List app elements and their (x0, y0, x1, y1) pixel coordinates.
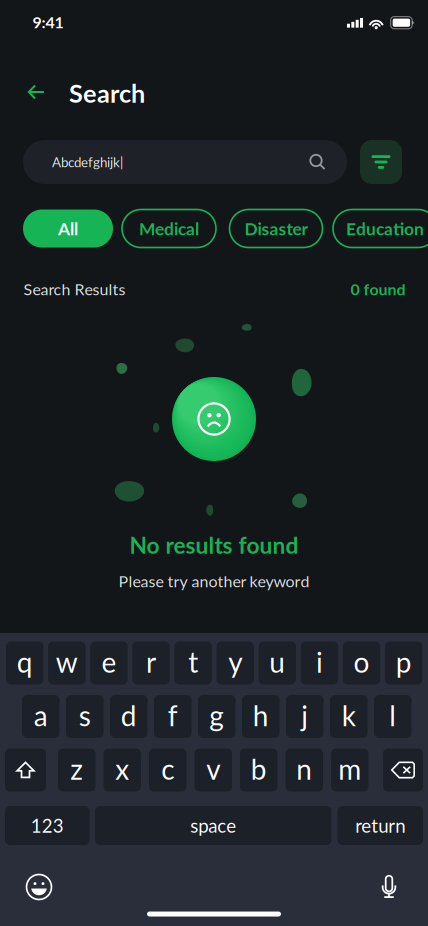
button[interactable]: d (110, 695, 147, 738)
button[interactable]: i (301, 641, 338, 684)
button[interactable]: Education (333, 209, 428, 247)
staticText: 9:41 (32, 12, 63, 32)
button[interactable]: return (338, 806, 423, 845)
button[interactable]: p (385, 641, 422, 684)
button[interactable]: Abcdefghijk| (23, 140, 347, 184)
button[interactable]: h (242, 695, 279, 738)
button[interactable]: e (90, 641, 128, 684)
button[interactable]: space (95, 806, 332, 845)
button[interactable]: Disaster (229, 209, 322, 247)
button[interactable]: n (285, 748, 323, 791)
button[interactable]: y (216, 641, 254, 684)
staticText: Education (346, 218, 424, 239)
button[interactable]: v (194, 748, 232, 791)
staticText: Search Results (23, 279, 125, 299)
staticText: v (206, 752, 220, 786)
button[interactable]: t (174, 641, 212, 684)
staticText: b (251, 752, 267, 786)
button[interactable]: Dictate (366, 865, 412, 907)
staticText: k (342, 699, 356, 732)
staticText: t (188, 645, 198, 679)
button[interactable]: Delete (383, 748, 423, 791)
staticText: n (296, 752, 312, 786)
staticText: s (79, 699, 91, 732)
staticText: Please try another keyword (118, 571, 309, 591)
staticText: 123 (31, 814, 64, 837)
staticText: l (389, 699, 396, 732)
staticText: Abcdefghijk| (52, 154, 123, 170)
staticText: o (354, 645, 370, 679)
button[interactable]: m (331, 748, 368, 791)
staticText: j (301, 699, 308, 732)
staticText: e (101, 645, 116, 679)
button[interactable]: Shift (5, 748, 46, 791)
staticText: u (269, 645, 285, 679)
staticText: No results found (129, 531, 298, 559)
button[interactable]: s (66, 695, 103, 738)
staticText: r (146, 645, 156, 679)
button[interactable]: l (374, 695, 411, 738)
staticText: Search (69, 78, 145, 108)
button[interactable]: q (6, 641, 43, 684)
button[interactable]: f (154, 695, 191, 738)
button[interactable]: k (330, 695, 367, 738)
staticText: f (168, 699, 178, 732)
staticText: All (58, 218, 78, 239)
button[interactable]: j (286, 695, 323, 738)
button[interactable]: w (48, 641, 86, 684)
staticText: m (338, 752, 361, 786)
button[interactable]: Medical (122, 209, 216, 247)
button[interactable]: r (132, 641, 170, 684)
staticText: return (355, 814, 405, 837)
staticText: h (253, 699, 269, 732)
button[interactable]: 123 (5, 806, 89, 845)
button[interactable]: Back (19, 75, 53, 109)
button[interactable]: x (103, 748, 141, 791)
button[interactable]: u (259, 641, 296, 684)
staticText: Disaster (244, 218, 307, 239)
staticText: d (121, 699, 137, 732)
staticText: a (34, 699, 48, 732)
staticText: 0 found (350, 279, 405, 299)
button[interactable]: a (22, 695, 59, 738)
staticText: i (316, 645, 323, 679)
button[interactable]: Filter (360, 140, 402, 184)
staticText: x (115, 752, 129, 786)
staticText: z (70, 752, 83, 786)
staticText: c (161, 752, 174, 786)
button[interactable]: Emoji (16, 866, 62, 908)
button[interactable]: o (343, 641, 380, 684)
button[interactable]: c (149, 748, 186, 791)
button[interactable]: z (58, 748, 95, 791)
staticText: y (228, 645, 242, 679)
staticText: Medical (139, 218, 199, 239)
button[interactable]: All (23, 209, 113, 247)
staticText: q (17, 645, 33, 679)
staticText: space (190, 814, 236, 837)
staticText: p (396, 645, 412, 679)
button[interactable]: b (240, 748, 277, 791)
button[interactable]: g (198, 695, 235, 738)
staticText: w (56, 645, 78, 679)
staticText: g (209, 699, 224, 732)
